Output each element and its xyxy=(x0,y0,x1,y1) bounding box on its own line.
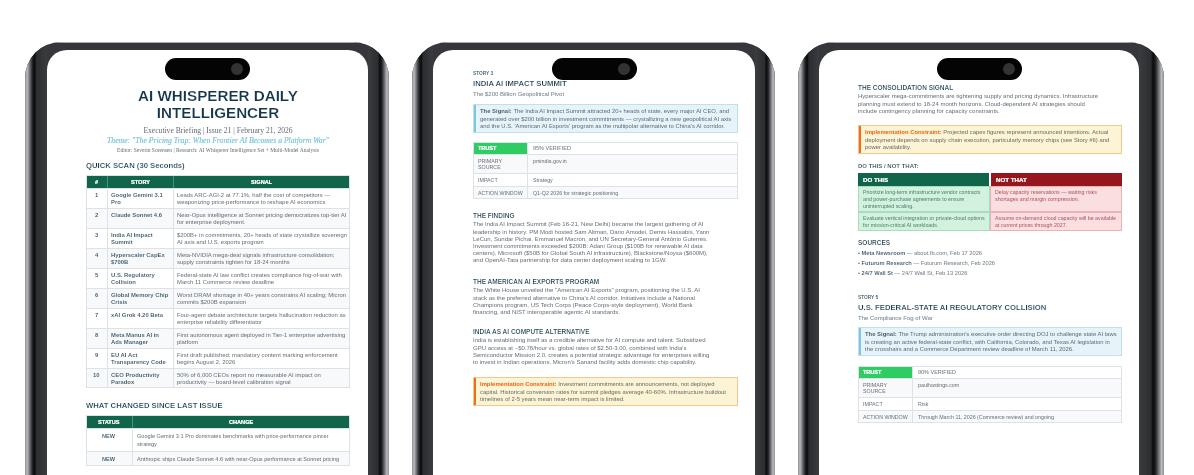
staticText: QUICK SCAN (30 Seconds) xyxy=(86,161,185,170)
staticText: xAI Grok 4.20 Beta xyxy=(111,312,164,319)
staticText: 3 xyxy=(95,232,99,239)
staticText: paulhastings.com xyxy=(918,382,960,388)
staticText: First draft published; mandatory content… xyxy=(177,352,347,365)
staticText: IMPACT xyxy=(863,401,883,407)
staticText: AI WHISPERER DAILY xyxy=(86,87,350,104)
staticText: Leads ARC-AGI-2 at 77.1%, half the cost … xyxy=(177,192,347,205)
staticText: 95% VERIFIED xyxy=(533,145,571,151)
staticText: The India AI Impact Summit (Feb 16-21, N… xyxy=(473,221,714,263)
button[interactable]: NEW xyxy=(86,452,350,466)
button[interactable]: 5 xyxy=(86,269,350,288)
staticText: 1 xyxy=(95,192,99,199)
staticText: U.S. FEDERAL-STATE AI REGULATORY COLLISI… xyxy=(858,303,1047,312)
staticText: Four-agent debate architecture targets h… xyxy=(177,312,347,325)
staticText: THE CONSOLIDATION SIGNAL xyxy=(858,84,954,91)
staticText: Q1-Q2 2026 for strategic positioning xyxy=(533,190,619,196)
staticText: INTELLIGENCER xyxy=(86,104,350,121)
staticText: India AI Impact Summit xyxy=(111,232,171,245)
staticText: Global Memory Chip Crisis xyxy=(111,292,171,305)
staticText: CHANGE xyxy=(229,419,254,425)
staticText: 5 xyxy=(95,272,99,279)
staticText: pmindia.gov.in xyxy=(533,158,567,164)
staticText: SIGNAL xyxy=(251,179,273,185)
staticText: Delay capacity reservations — waiting ri… xyxy=(995,189,1118,202)
staticText: India is establishing itself as a credib… xyxy=(473,337,714,365)
staticText: 10 xyxy=(93,372,100,379)
staticText: WHAT CHANGED SINCE LAST ISSUE xyxy=(86,401,223,410)
staticText: Implementation Constraint: Projected cap… xyxy=(865,129,1117,150)
staticText: First autonomous agent deployed in Tier-… xyxy=(177,332,347,345)
staticText: NOT THAT xyxy=(996,176,1027,183)
button[interactable]: 8 xyxy=(86,329,350,348)
staticText: Evaluate vertical integration or private… xyxy=(863,215,986,228)
staticText: STORY 3 xyxy=(473,71,494,76)
staticText: $200B+ in commitments, 20+ heads of stat… xyxy=(177,232,347,245)
staticText: Meta-NVIDIA mega-deal signals infrastruc… xyxy=(177,252,347,265)
staticText: Google Gemini 3.1 Pro dominates benchmar… xyxy=(137,433,347,447)
button[interactable]: 3 xyxy=(86,229,350,248)
staticText: DO THIS xyxy=(863,176,889,183)
staticText: Claude Sonnet 4.6 xyxy=(111,212,163,219)
staticText: 50% of 6,000 CEOs report no measurable A… xyxy=(177,372,347,385)
staticText: # xyxy=(95,179,99,185)
staticText: INDIA AI IMPACT SUMMIT xyxy=(473,79,567,88)
staticText: CEO Productivity Paradox xyxy=(111,372,171,385)
staticText: 9 xyxy=(95,352,99,359)
button[interactable]: 1 xyxy=(86,189,350,208)
staticText: 4 xyxy=(95,252,99,259)
staticText: INDIA AS AI COMPUTE ALTERNATIVE xyxy=(473,328,590,335)
staticText: 2 xyxy=(95,212,99,219)
staticText: STORY xyxy=(131,179,150,185)
staticText: Implementation Constraint: Investment co… xyxy=(480,381,733,402)
staticText: 8 xyxy=(95,332,99,339)
button[interactable]: 9 xyxy=(86,349,350,368)
staticText: 7 xyxy=(95,312,99,319)
button[interactable]: 2 xyxy=(86,209,350,228)
staticText: THE FINDING xyxy=(473,212,515,219)
staticText: NEW xyxy=(102,433,116,439)
staticText: Hyperscaler CapEx $700B xyxy=(111,252,171,265)
button[interactable]: • Futurum Research — Futurum Research, F… xyxy=(858,260,995,266)
staticText: Through March 11, 2026 (Commerce review)… xyxy=(918,414,1054,420)
button[interactable]: • Meta Newsroom — about.fb.com, Feb 17 2… xyxy=(858,250,983,256)
staticText: Executive Briefing | Issue 21 | February… xyxy=(86,126,350,134)
staticText: Worst DRAM shortage in 40+ years constra… xyxy=(177,292,347,305)
staticText: Strategy xyxy=(533,177,553,183)
staticText: STATUS xyxy=(98,419,120,425)
staticText: ACTION WINDOW xyxy=(863,414,908,420)
staticText: The White House unveiled the "American A… xyxy=(473,287,714,315)
staticText: DO THIS / NOT THAT: xyxy=(858,163,919,170)
staticText: ACTION WINDOW xyxy=(478,190,523,196)
button[interactable]: 7 xyxy=(86,309,350,328)
staticText: Assume on-demand cloud capacity will be … xyxy=(995,215,1118,228)
staticText: THE AMERICAN AI EXPORTS PROGRAM xyxy=(473,278,600,285)
staticText: Meta Manus AI in Ads Manager xyxy=(111,332,171,345)
staticText: The $200 Billion Geopolitical Pivot xyxy=(473,91,565,98)
staticText: SOURCES xyxy=(858,239,891,246)
staticText: PRIMARY SOURCE xyxy=(863,382,888,394)
staticText: TRUST xyxy=(478,145,497,151)
staticText: Federal-state AI law conflict creates co… xyxy=(177,272,347,285)
staticText: Anthropic ships Claude Sonnet 4.6 with n… xyxy=(137,456,340,462)
staticText: Editor: Severin Sorensen | Research: AI … xyxy=(86,147,350,153)
staticText: Hyperscaler mega-commitments are tighten… xyxy=(858,93,1099,114)
staticText: IMPACT xyxy=(478,177,498,183)
staticText: 90% VERIFIED xyxy=(918,369,956,375)
button[interactable]: 10 xyxy=(86,369,350,388)
staticText: STORY 5 xyxy=(858,295,879,300)
staticText: U.S. Regulatory Collision xyxy=(111,272,171,285)
button[interactable]: NEW xyxy=(86,429,350,451)
button[interactable]: 4 xyxy=(86,249,350,268)
staticText: Google Gemini 3.1 Pro xyxy=(111,192,171,205)
staticText: EU AI Act Transparency Code xyxy=(111,352,171,365)
staticText: The Signal: The India AI Impact Summit a… xyxy=(480,108,733,129)
staticText: PRIMARY SOURCE xyxy=(478,158,503,170)
staticText: Theme: "The Pricing Trap: When Frontier … xyxy=(86,136,350,145)
button[interactable]: • 24/7 Wall St — 24/7 Wall St, Feb 13 20… xyxy=(858,270,968,276)
staticText: 6 xyxy=(95,292,99,299)
staticText: The Compliance Fog of War xyxy=(858,315,933,322)
staticText: TRUST xyxy=(863,369,882,375)
staticText: The Signal: The Trump administration's e… xyxy=(865,331,1117,352)
staticText: Risk xyxy=(918,401,929,407)
button[interactable]: 6 xyxy=(86,289,350,308)
